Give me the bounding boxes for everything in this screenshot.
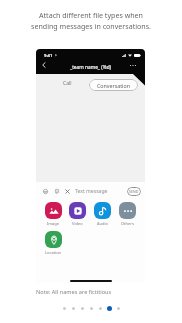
staticText: Video bbox=[72, 221, 83, 226]
button[interactable]: Location bbox=[41, 231, 66, 255]
staticText: Audio bbox=[97, 221, 108, 226]
staticText: Call bbox=[63, 80, 72, 87]
button[interactable]: Audio bbox=[90, 202, 115, 226]
button[interactable]: SEND bbox=[127, 187, 141, 196]
staticText: Location bbox=[45, 250, 62, 255]
staticText: Conversation bbox=[97, 82, 130, 89]
button[interactable]: Sticker bbox=[51, 186, 62, 197]
button[interactable]: Others bbox=[115, 202, 140, 226]
staticText: Image bbox=[47, 221, 60, 226]
button[interactable]: Back bbox=[39, 60, 49, 70]
button[interactable]: Close bbox=[62, 186, 73, 197]
staticText: Note: All names are fictitious bbox=[36, 288, 112, 296]
button[interactable]: Image bbox=[41, 202, 65, 226]
staticText: Text message bbox=[75, 188, 108, 195]
staticText: Attach different file types when sending… bbox=[31, 10, 151, 31]
button[interactable]: More options bbox=[128, 60, 138, 70]
staticText: 9:41 bbox=[44, 53, 53, 59]
button[interactable]: Call bbox=[57, 74, 77, 93]
button[interactable]: Emoji bbox=[40, 186, 51, 197]
button[interactable]: Conversation bbox=[89, 79, 138, 91]
staticText: _team name_ (%d) bbox=[70, 64, 112, 71]
staticText: Others bbox=[121, 221, 134, 226]
button[interactable]: Video bbox=[65, 202, 90, 226]
staticText: SEND bbox=[129, 189, 139, 194]
